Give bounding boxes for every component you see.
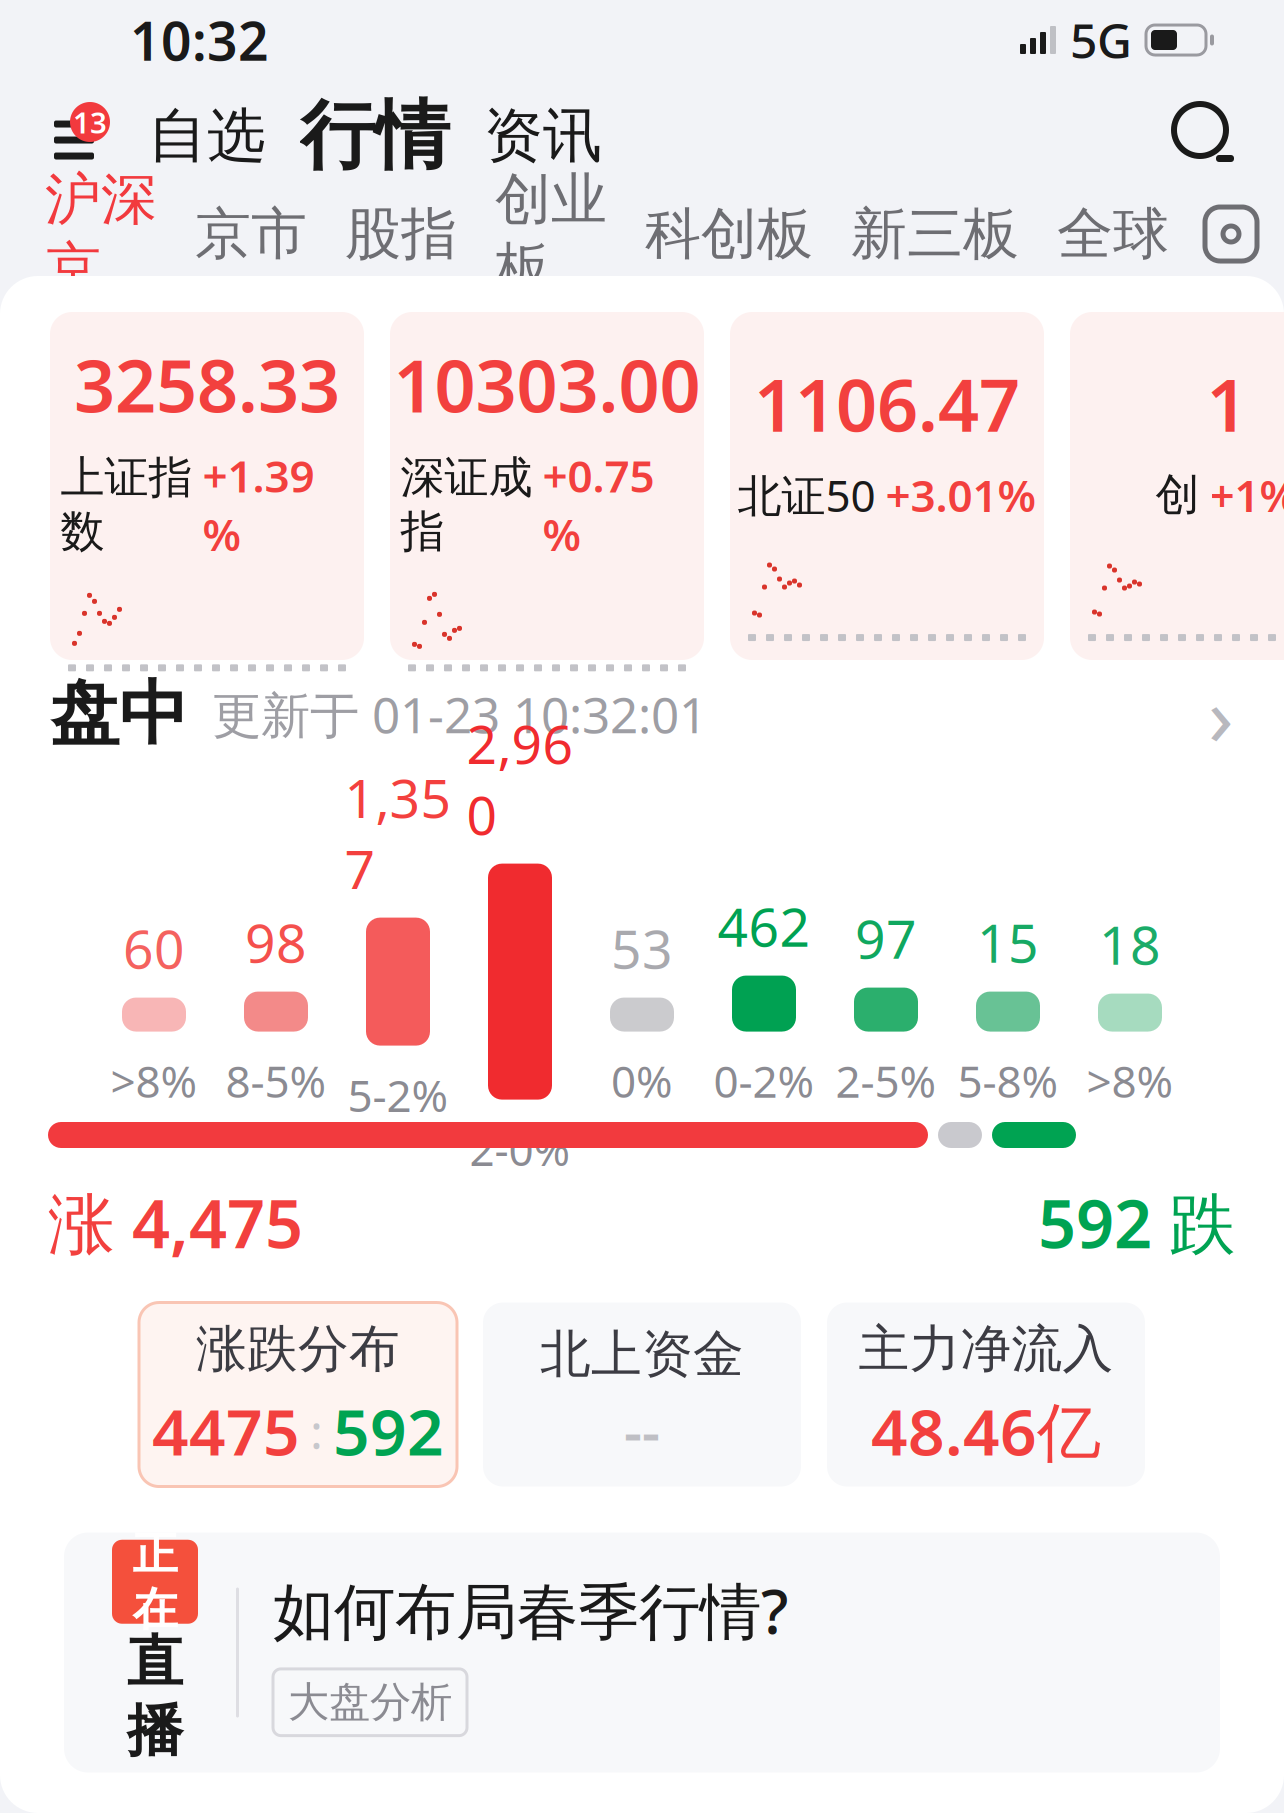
staticText: 涨 4,475 bbox=[48, 1178, 303, 1266]
staticText: >8% bbox=[110, 1052, 197, 1110]
button[interactable]: Menu, 13 notifications bbox=[46, 102, 118, 170]
staticText: +0.75% bbox=[542, 446, 654, 563]
staticText: › bbox=[1208, 659, 1234, 769]
staticText: 3258.33 bbox=[74, 337, 340, 432]
staticText: 5-2% bbox=[347, 1066, 448, 1124]
button[interactable]: 资讯 bbox=[484, 100, 602, 172]
staticText: 涨跌分布 bbox=[196, 1318, 400, 1380]
staticText: 盘中 bbox=[50, 671, 188, 757]
staticText: 5-8% bbox=[957, 1052, 1058, 1110]
staticText: >8% bbox=[1086, 1052, 1173, 1110]
button[interactable]: 10303.00 bbox=[390, 312, 704, 660]
staticText: 4475 bbox=[152, 1388, 300, 1473]
button[interactable]: 新三板 bbox=[832, 192, 1038, 276]
staticText: 深证成指 bbox=[400, 451, 532, 559]
staticText: 资讯 bbox=[484, 100, 602, 172]
staticText: 北上资金 bbox=[540, 1323, 744, 1385]
button[interactable]: 科创板 bbox=[626, 192, 832, 276]
staticText: 1,357 bbox=[344, 762, 451, 904]
staticText: 更新于 01-23 10:32:01 bbox=[212, 681, 707, 747]
button[interactable]: 主力净流入 bbox=[827, 1302, 1145, 1486]
staticText: 97 bbox=[855, 903, 917, 973]
staticText: 1 bbox=[1206, 356, 1247, 452]
button[interactable]: 正在 bbox=[64, 1532, 1220, 1772]
staticText: 科创板 bbox=[645, 200, 813, 268]
button[interactable]: 3258.33 bbox=[50, 312, 364, 660]
staticText: 592 跌 bbox=[1038, 1178, 1236, 1266]
button[interactable]: 自选 bbox=[148, 100, 266, 172]
staticText: 京市 bbox=[195, 200, 307, 268]
staticText: 股指 bbox=[345, 200, 457, 268]
staticText: 2-0% bbox=[469, 1120, 570, 1178]
button[interactable]: 全球 bbox=[1038, 192, 1188, 276]
staticText: 1106.47 bbox=[754, 356, 1020, 452]
staticText: 2,960 bbox=[466, 708, 573, 850]
button[interactable]: 创业板 bbox=[476, 192, 626, 276]
button[interactable]: 盘中 bbox=[0, 660, 1284, 768]
staticText: 462 bbox=[717, 891, 810, 961]
button[interactable]: 京市 bbox=[176, 192, 326, 276]
staticText: 直播 bbox=[127, 1628, 183, 1765]
staticText: 60 bbox=[123, 913, 185, 983]
staticText: 98 bbox=[245, 907, 307, 977]
staticText: : bbox=[310, 1399, 323, 1462]
staticText: 592 bbox=[333, 1388, 444, 1473]
staticText: 大盘分析 bbox=[288, 1677, 452, 1728]
staticText: 正在 bbox=[132, 1526, 177, 1637]
staticText: -- bbox=[624, 1393, 660, 1468]
staticText: +1% bbox=[1209, 466, 1284, 524]
staticText: 2-5% bbox=[835, 1052, 936, 1110]
staticText: 自选 bbox=[148, 100, 266, 172]
staticText: 北证50 bbox=[737, 466, 875, 524]
button[interactable]: Edit categories bbox=[1188, 192, 1274, 276]
staticText: 主力净流入 bbox=[858, 1318, 1113, 1380]
staticText: +3.01% bbox=[885, 466, 1036, 524]
staticText: 15 bbox=[977, 907, 1039, 977]
staticText: 8-5% bbox=[225, 1052, 326, 1110]
staticText: 如何布局春季行情? bbox=[273, 1569, 788, 1651]
staticText: 沪深京 bbox=[45, 165, 157, 303]
staticText: 上证指数 bbox=[60, 451, 192, 559]
staticText: 0-2% bbox=[713, 1052, 814, 1110]
staticText: 10303.00 bbox=[393, 337, 700, 432]
staticText: 18 bbox=[1099, 909, 1161, 979]
staticText: 创业板 bbox=[495, 165, 607, 303]
staticText: 48.46亿 bbox=[871, 1388, 1101, 1473]
button[interactable]: Search bbox=[1168, 98, 1244, 174]
button[interactable]: 股指 bbox=[326, 192, 476, 276]
button[interactable]: 沪深京 bbox=[26, 192, 176, 276]
button[interactable]: 1106.47 bbox=[730, 312, 1044, 660]
staticText: 53 bbox=[611, 913, 673, 983]
staticText: 全球 bbox=[1057, 200, 1169, 268]
staticText: +1.39% bbox=[202, 446, 314, 563]
staticText: 创 bbox=[1155, 468, 1199, 522]
staticText: 13 bbox=[73, 102, 107, 141]
button[interactable]: 北上资金 bbox=[483, 1302, 801, 1486]
button[interactable]: 行情 bbox=[300, 90, 450, 182]
staticText: 10:32 bbox=[130, 5, 269, 75]
staticText: 0% bbox=[611, 1052, 673, 1110]
button[interactable]: 涨跌分布 bbox=[139, 1302, 457, 1486]
staticText: 5G bbox=[1070, 8, 1132, 72]
staticText: 新三板 bbox=[851, 200, 1019, 268]
button[interactable]: 1 bbox=[1070, 312, 1284, 660]
staticText: 行情 bbox=[300, 90, 450, 182]
